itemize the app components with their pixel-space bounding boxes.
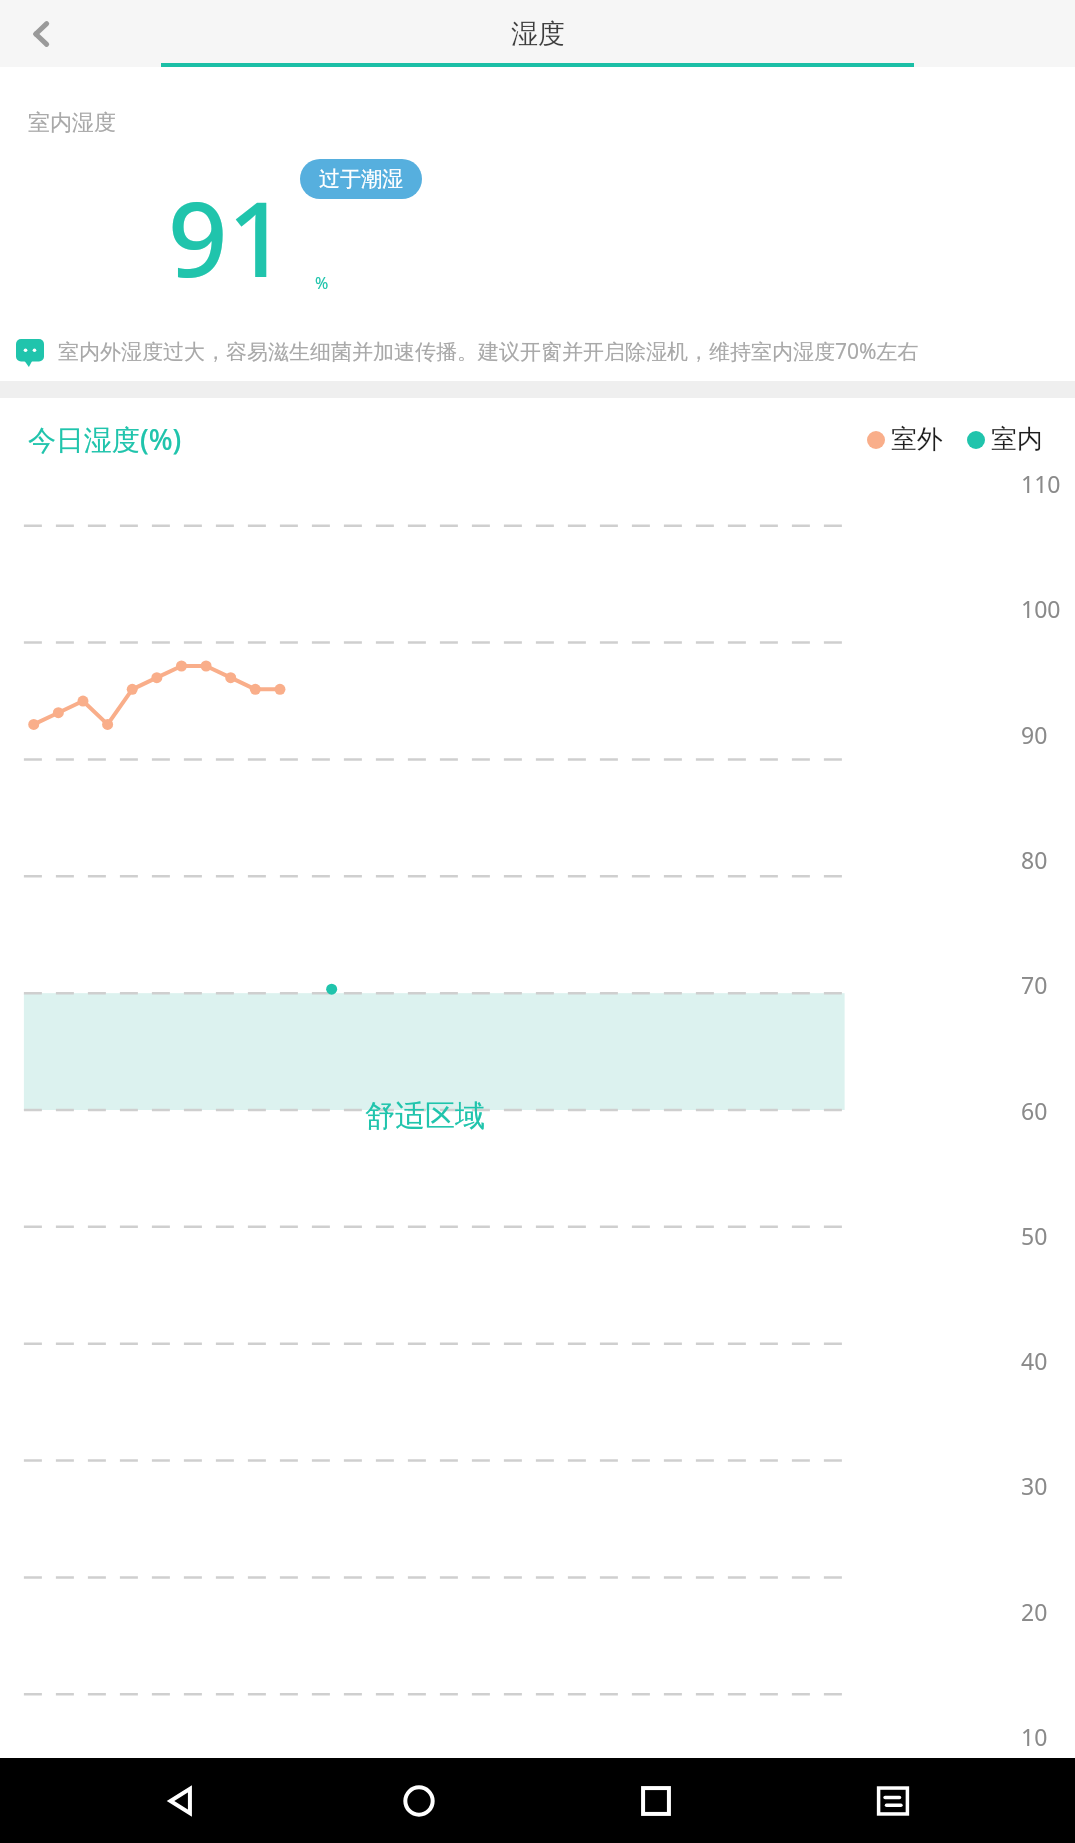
button[interactable]: Switch [838,1758,948,1843]
staticText: 室内外湿度过大，容易滋生细菌并加速传播。建议开窗并开启除湿机，维持室内湿度70%… [58,337,1069,366]
staticText: 今日湿度(%) [28,420,182,458]
staticText: 10 [1021,1721,1048,1752]
staticText: 90 [1021,719,1048,750]
staticText: % [315,272,329,294]
button[interactable]: Home [364,1758,474,1843]
staticText: 20 [1021,1596,1048,1627]
button[interactable]: Back [127,1758,237,1843]
staticText: 室内 [991,423,1043,456]
staticText: 100 [1021,593,1061,624]
staticText: 40 [1021,1345,1048,1376]
staticText: 60 [1021,1095,1048,1126]
staticText: 70 [1021,969,1048,1000]
button[interactable]: Recent apps [601,1758,711,1843]
staticText: 舒适区域 [365,1097,485,1135]
staticText: 80 [1021,844,1048,875]
staticText: 室内湿度 [28,109,116,137]
staticText: 50 [1021,1220,1048,1251]
button[interactable]: 过于潮湿 [300,159,422,199]
staticText: 湿度 [511,17,565,51]
staticText: 30 [1021,1470,1048,1501]
staticText: 91 [168,166,287,308]
button[interactable]: Back [14,6,70,62]
staticText: 室外 [891,423,943,456]
staticText: 过于潮湿 [319,166,403,192]
staticText: 110 [1021,468,1061,499]
